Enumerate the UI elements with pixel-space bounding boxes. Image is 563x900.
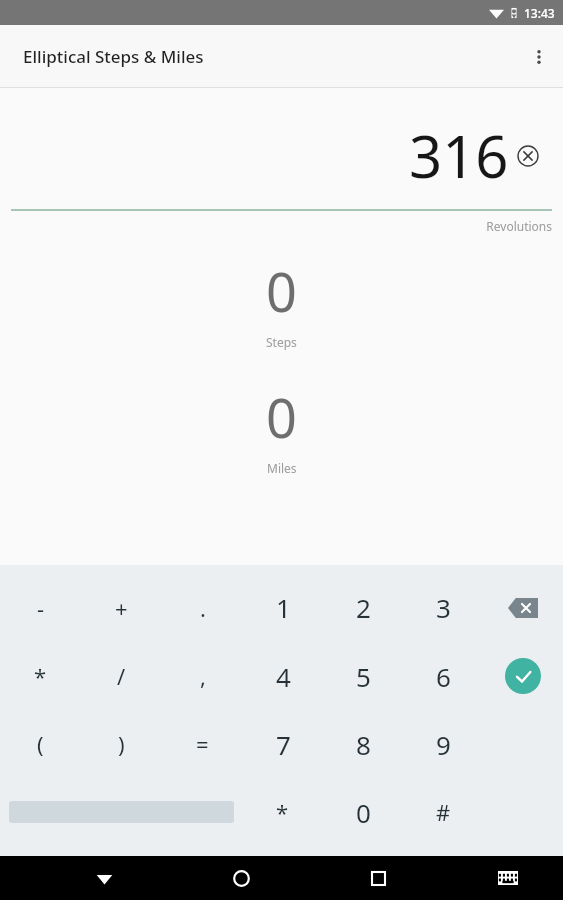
button[interactable]: 5 (323, 642, 403, 710)
staticText: 0 (356, 795, 371, 830)
button[interactable]: 9 (403, 710, 483, 778)
staticText: + (115, 593, 128, 623)
staticText: 6 (436, 659, 451, 694)
button[interactable]: More options (515, 33, 563, 81)
button[interactable]: * (242, 778, 323, 846)
button[interactable]: , (162, 642, 243, 710)
staticText: , (200, 661, 206, 691)
button[interactable]: 3 (403, 573, 483, 642)
button[interactable]: 4 (243, 642, 323, 710)
staticText: ( (37, 729, 44, 759)
button[interactable]: 6 (403, 642, 483, 710)
staticText: 8 (356, 727, 371, 762)
button[interactable]: / (81, 642, 162, 710)
button[interactable]: - (0, 573, 81, 642)
button[interactable]: * (0, 642, 81, 710)
button[interactable]: Back (65, 856, 143, 900)
button[interactable]: 2 (323, 573, 403, 642)
button[interactable]: + (81, 573, 162, 642)
staticText: 3 (436, 590, 451, 625)
staticText: . (200, 593, 206, 623)
staticText: # (436, 797, 451, 827)
button[interactable]: = (162, 710, 243, 778)
button[interactable]: Clear text (511, 139, 545, 173)
button[interactable]: . (162, 573, 243, 642)
staticText: 5 (356, 659, 371, 694)
staticText: - (37, 593, 45, 623)
button[interactable]: Backspace (483, 573, 563, 642)
staticText: 7 (276, 727, 291, 762)
staticText: 0 (266, 380, 297, 454)
button[interactable]: Space (0, 778, 242, 846)
button[interactable]: 0 (323, 778, 403, 846)
staticText: ) (118, 729, 125, 759)
button[interactable]: 1 (243, 573, 323, 642)
staticText: / (117, 661, 126, 691)
staticText: 13:43 (524, 5, 555, 21)
button[interactable]: ( (0, 710, 81, 778)
staticText: 2 (356, 590, 371, 625)
staticText: Revolutions (0, 218, 552, 234)
staticText: 4 (276, 659, 291, 694)
staticText: = (196, 729, 209, 759)
button[interactable]: Switch keyboard (469, 856, 547, 900)
button[interactable]: Enter (483, 642, 563, 710)
staticText: * (34, 661, 47, 691)
staticText: 0 (266, 254, 297, 328)
button[interactable]: 7 (243, 710, 323, 778)
staticText: Miles (267, 460, 297, 476)
staticText: Steps (266, 334, 297, 350)
staticText: Elliptical Steps & Miles (23, 45, 204, 68)
staticText: 1 (276, 590, 291, 625)
button[interactable]: ) (81, 710, 162, 778)
button[interactable]: Home (202, 856, 280, 900)
staticText: 9 (436, 727, 451, 762)
button[interactable]: Recent apps (339, 856, 417, 900)
button[interactable]: 8 (323, 710, 403, 778)
staticText: 316 (409, 116, 509, 195)
button[interactable]: # (403, 778, 483, 846)
staticText: * (276, 797, 289, 827)
